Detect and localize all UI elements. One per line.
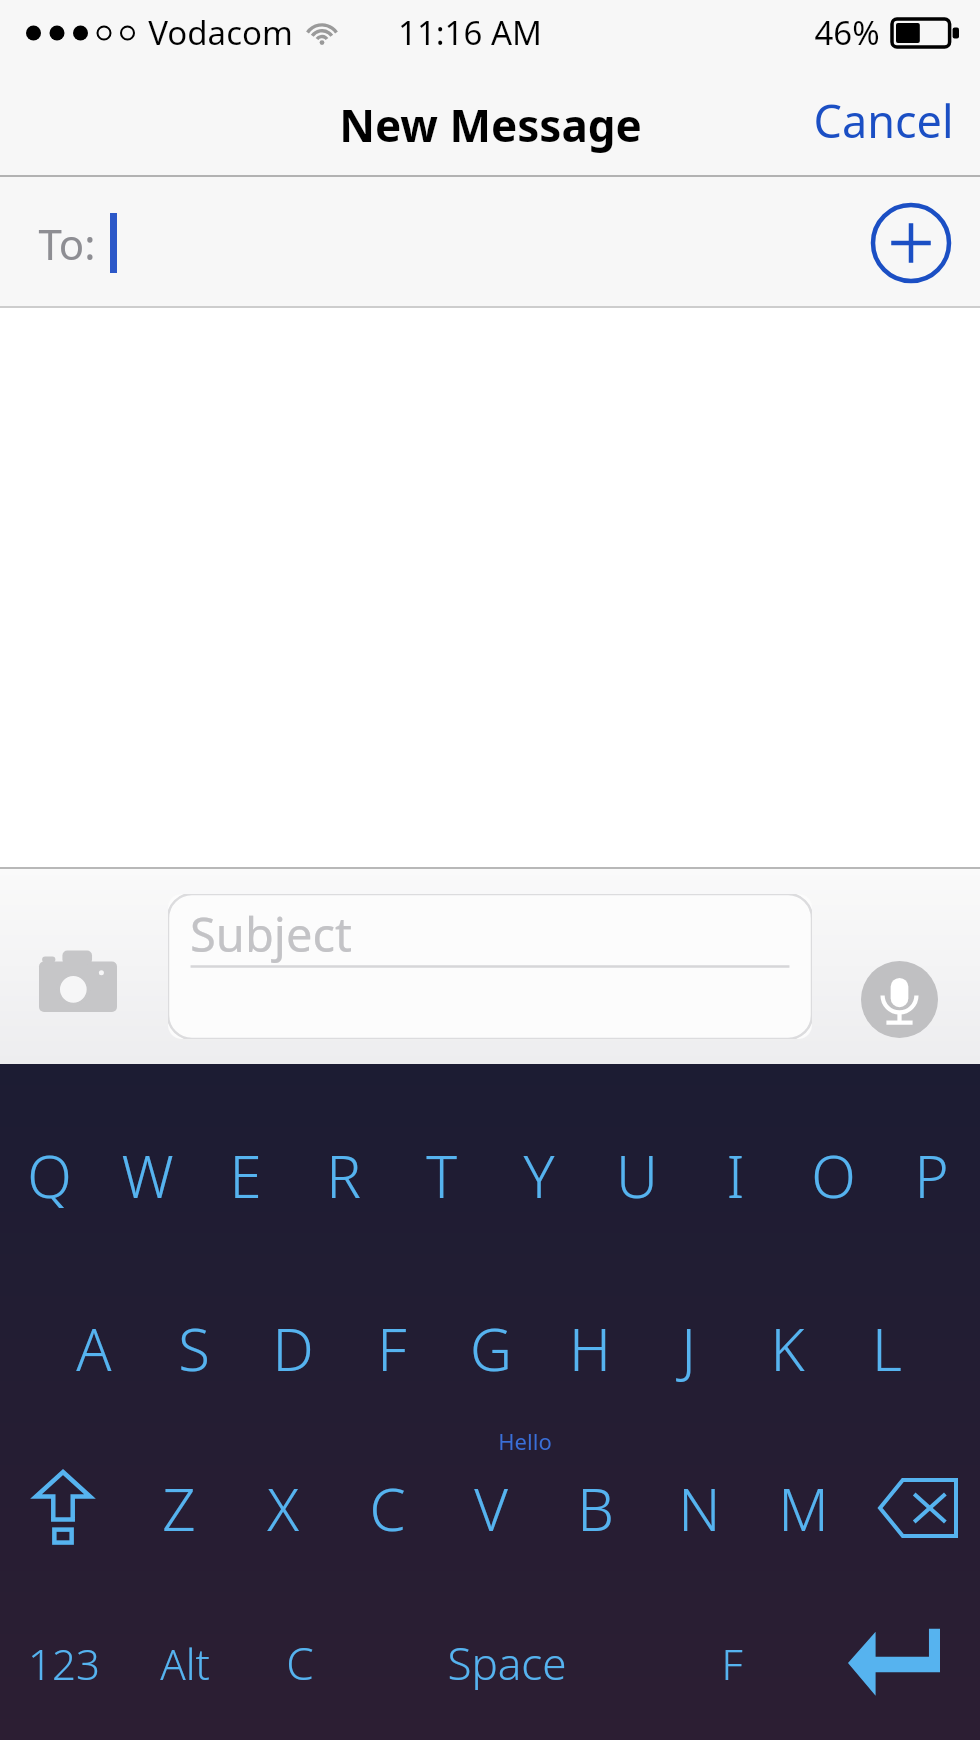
button[interactable]: G bbox=[441, 1289, 540, 1407]
button[interactable]: T bbox=[392, 1116, 490, 1234]
button[interactable]: Cancel bbox=[787, 76, 980, 165]
staticText: Space bbox=[447, 1633, 567, 1693]
staticText: Z bbox=[162, 1469, 196, 1548]
button[interactable]: V bbox=[439, 1449, 543, 1567]
button[interactable]: Alt bbox=[127, 1604, 242, 1722]
staticText: S bbox=[178, 1309, 210, 1388]
button[interactable]: O bbox=[784, 1116, 882, 1234]
button[interactable]: Subject bbox=[168, 894, 812, 1039]
button[interactable]: U bbox=[588, 1116, 686, 1234]
button[interactable]: Return bbox=[807, 1604, 980, 1722]
button[interactable]: D bbox=[243, 1289, 342, 1407]
staticText: T bbox=[426, 1136, 457, 1215]
staticText: M bbox=[778, 1469, 829, 1548]
button[interactable]: W bbox=[98, 1116, 196, 1234]
staticText: To: bbox=[38, 215, 96, 272]
staticText: P bbox=[914, 1136, 949, 1215]
staticText: F bbox=[721, 1635, 743, 1692]
staticText: Hello bbox=[498, 1426, 552, 1456]
staticText: Alt bbox=[160, 1635, 210, 1692]
button[interactable]: I bbox=[686, 1116, 784, 1234]
staticText: C bbox=[286, 1633, 314, 1693]
staticText: N bbox=[678, 1469, 721, 1548]
staticText: Y bbox=[523, 1136, 555, 1215]
button[interactable]: X bbox=[231, 1449, 335, 1567]
button[interactable]: N bbox=[647, 1449, 751, 1567]
button[interactable]: Backspace bbox=[855, 1449, 980, 1567]
button[interactable]: Add contact bbox=[870, 202, 952, 284]
button[interactable]: To: bbox=[0, 177, 980, 308]
button[interactable]: E bbox=[196, 1116, 294, 1234]
button[interactable]: H bbox=[540, 1289, 639, 1407]
staticText: I bbox=[726, 1136, 745, 1215]
staticText: K bbox=[770, 1309, 805, 1388]
button[interactable]: Space bbox=[357, 1604, 657, 1722]
button[interactable]: A bbox=[44, 1289, 144, 1407]
button[interactable]: F bbox=[657, 1604, 807, 1722]
button[interactable]: P bbox=[882, 1116, 980, 1234]
staticText: 46% bbox=[814, 10, 880, 55]
staticText: C bbox=[369, 1469, 406, 1548]
staticText: 123 bbox=[28, 1635, 100, 1692]
staticText: E bbox=[229, 1136, 262, 1215]
button[interactable]: 123 bbox=[0, 1604, 127, 1722]
button[interactable]: Q bbox=[0, 1116, 98, 1234]
staticText: Q bbox=[27, 1136, 72, 1215]
staticText: Vodacom bbox=[148, 10, 293, 55]
button[interactable]: S bbox=[144, 1289, 243, 1407]
staticText: D bbox=[272, 1309, 314, 1388]
staticText: 11:16 AM bbox=[398, 10, 542, 55]
button[interactable]: Shift bbox=[0, 1449, 126, 1567]
staticText: L bbox=[872, 1309, 902, 1388]
staticText: W bbox=[121, 1136, 174, 1215]
button[interactable]: K bbox=[738, 1289, 837, 1407]
button[interactable]: C bbox=[242, 1604, 357, 1722]
staticText: B bbox=[577, 1469, 614, 1548]
staticText: O bbox=[811, 1136, 856, 1215]
staticText: H bbox=[569, 1309, 611, 1388]
staticText: Cancel bbox=[813, 90, 954, 151]
staticText: X bbox=[267, 1469, 299, 1548]
staticText: Subject bbox=[190, 902, 352, 966]
staticText: U bbox=[616, 1136, 658, 1215]
button[interactable]: Z bbox=[126, 1449, 231, 1567]
staticText: A bbox=[76, 1309, 112, 1388]
button[interactable]: Y bbox=[490, 1116, 588, 1234]
button[interactable]: M bbox=[751, 1449, 855, 1567]
button[interactable]: L bbox=[837, 1289, 936, 1407]
staticText: R bbox=[326, 1136, 361, 1215]
staticText: J bbox=[681, 1309, 696, 1388]
button[interactable]: Camera bbox=[28, 931, 128, 1021]
button[interactable]: C bbox=[335, 1449, 439, 1567]
button[interactable]: R bbox=[294, 1116, 392, 1234]
staticText: New Message bbox=[339, 95, 642, 155]
staticText: G bbox=[470, 1309, 512, 1388]
staticText: V bbox=[474, 1469, 508, 1548]
button[interactable]: Dictate bbox=[861, 961, 938, 1038]
button[interactable]: J bbox=[639, 1289, 738, 1407]
staticText: F bbox=[377, 1309, 407, 1388]
button[interactable]: B bbox=[543, 1449, 647, 1567]
button[interactable]: F bbox=[342, 1289, 441, 1407]
